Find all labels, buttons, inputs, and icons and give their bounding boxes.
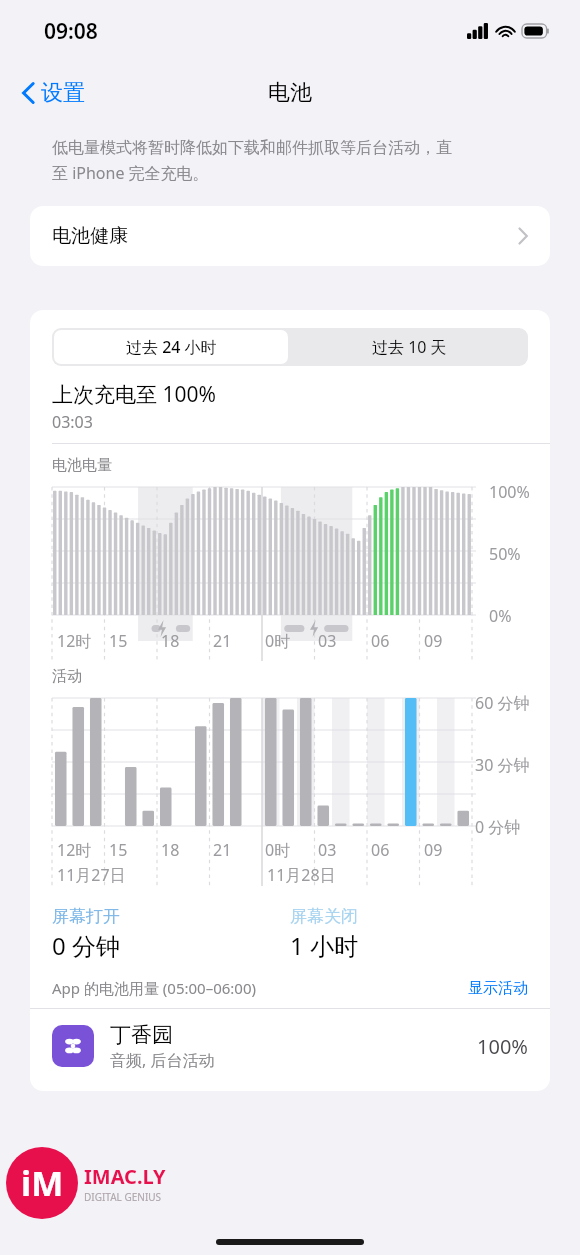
button[interactable]: 电池健康: [30, 206, 550, 266]
staticText: 至 iPhone 完全充电。: [52, 162, 209, 184]
staticText: 0%: [489, 605, 512, 627]
staticText: 屏幕关闭: [290, 906, 358, 927]
button[interactable]: 过去 24 小时: [54, 330, 288, 364]
staticText: iM: [21, 1160, 64, 1206]
staticText: 50%: [489, 543, 521, 565]
staticText: 15: [109, 839, 128, 861]
staticText: 03: [318, 839, 337, 861]
staticText: 03:03: [52, 411, 93, 433]
staticText: 09:08: [44, 17, 98, 46]
staticText: 09: [424, 630, 443, 652]
staticText: 100%: [489, 481, 530, 503]
staticText: 09: [424, 839, 443, 861]
staticText: 屏幕打开: [52, 906, 120, 927]
staticText: 30 分钟: [475, 754, 530, 776]
staticText: 活动: [52, 667, 82, 686]
button[interactable]: 设置: [14, 73, 93, 113]
staticText: 过去 10 天: [372, 336, 447, 358]
staticText: 06: [371, 839, 390, 861]
staticText: 过去 24 小时: [126, 336, 217, 358]
staticText: 06: [371, 630, 390, 652]
staticText: 18: [161, 630, 180, 652]
staticText: App 的电池用量 (05:00–06:00): [52, 978, 257, 998]
staticText: 低电量模式将暂时降低如下载和邮件抓取等后台活动，直: [52, 138, 452, 158]
staticText: 显示活动: [468, 979, 528, 998]
staticText: 音频, 后台活动: [110, 1049, 215, 1071]
staticText: 21: [213, 630, 232, 652]
staticText: 100%: [477, 1033, 528, 1060]
staticText: 上次充电至 100%: [52, 380, 216, 409]
staticText: 电池电量: [52, 456, 112, 475]
staticText: IMAC.LY: [84, 1163, 166, 1190]
staticText: 15: [109, 630, 128, 652]
staticText: 18: [161, 839, 180, 861]
staticText: 电池: [268, 79, 312, 107]
staticText: 电池健康: [52, 224, 128, 248]
staticText: 0时: [265, 630, 291, 652]
button[interactable]: 丁香园: [30, 1009, 550, 1083]
staticText: 0时: [265, 839, 291, 861]
button[interactable]: 显示活动: [468, 979, 528, 998]
staticText: DIGITAL GENIUS: [84, 1190, 162, 1204]
staticText: 0 分钟: [52, 929, 120, 962]
staticText: 丁香园: [110, 1022, 173, 1048]
staticText: 60 分钟: [475, 692, 530, 714]
staticText: 11月27日: [57, 864, 126, 886]
button[interactable]: 过去 10 天: [290, 328, 528, 366]
staticText: 03: [318, 630, 337, 652]
staticText: 设置: [41, 79, 85, 107]
staticText: 21: [213, 839, 232, 861]
staticText: 12时: [57, 630, 92, 652]
staticText: 11月28日: [267, 864, 336, 886]
staticText: 12时: [57, 839, 92, 861]
staticText: 0 分钟: [475, 816, 521, 838]
staticText: 1 小时: [290, 929, 358, 962]
